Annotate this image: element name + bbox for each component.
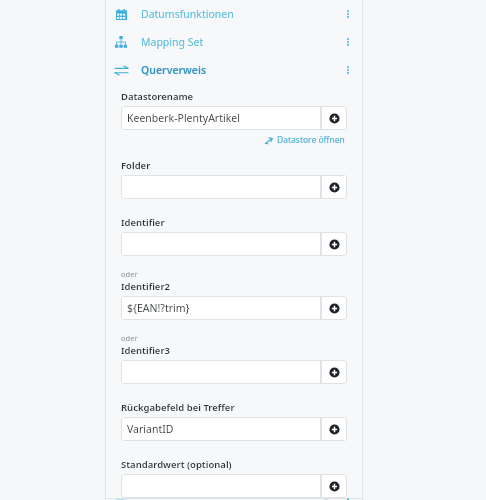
staticText: ${EAN!?trim} bbox=[127, 301, 190, 315]
button[interactable]: Add bbox=[321, 175, 347, 199]
staticText: Keenberk-PlentyArtikel bbox=[127, 111, 240, 125]
button[interactable]: Add bbox=[321, 360, 347, 384]
button[interactable]: Mapping Set bbox=[105, 28, 363, 56]
staticText: Datumsfunktionen bbox=[141, 7, 234, 21]
staticText: Identifier3 bbox=[121, 344, 170, 357]
staticText: Folder bbox=[121, 159, 151, 172]
button[interactable]: Add bbox=[321, 232, 347, 256]
staticText: Mapping Set bbox=[141, 35, 204, 49]
button[interactable]: More options for Datumsfunktionen bbox=[339, 5, 357, 23]
button[interactable]: Skript bbox=[105, 499, 363, 500]
staticText: Identifier bbox=[121, 216, 165, 229]
staticText: Datastorename bbox=[121, 90, 194, 103]
button[interactable]: Help bbox=[317, 499, 335, 500]
button[interactable]: More options for Skript bbox=[339, 499, 357, 500]
button[interactable]: Datastore öffnen bbox=[262, 133, 347, 147]
button[interactable]: Datumsfunktionen bbox=[105, 0, 363, 28]
button[interactable] bbox=[121, 474, 321, 498]
staticText: Querverweis bbox=[141, 63, 207, 77]
button[interactable]: Add bbox=[321, 474, 347, 498]
button[interactable]: Add bbox=[321, 296, 347, 320]
button[interactable]: More options for Mapping Set bbox=[339, 33, 357, 51]
button[interactable]: Querverweis bbox=[105, 56, 363, 84]
staticText: oder bbox=[121, 269, 138, 279]
staticText: Datastore öffnen bbox=[277, 134, 345, 146]
staticText: Rückgabefeld bei Treffer bbox=[121, 401, 235, 414]
button[interactable]: VariantID bbox=[121, 417, 321, 441]
button[interactable]: ${EAN!?trim} bbox=[121, 296, 321, 320]
button[interactable]: Add bbox=[321, 106, 347, 130]
button[interactable] bbox=[121, 175, 321, 199]
staticText: oder bbox=[121, 333, 138, 343]
button[interactable]: More options for Querverweis bbox=[339, 61, 357, 79]
staticText: VariantID bbox=[127, 422, 174, 436]
button[interactable] bbox=[121, 232, 321, 256]
button[interactable] bbox=[121, 360, 321, 384]
staticText: Standardwert (optional) bbox=[121, 458, 232, 471]
staticText: Identifier2 bbox=[121, 280, 170, 293]
button[interactable]: Keenberk-PlentyArtikel bbox=[121, 106, 321, 130]
button[interactable]: Add bbox=[321, 417, 347, 441]
